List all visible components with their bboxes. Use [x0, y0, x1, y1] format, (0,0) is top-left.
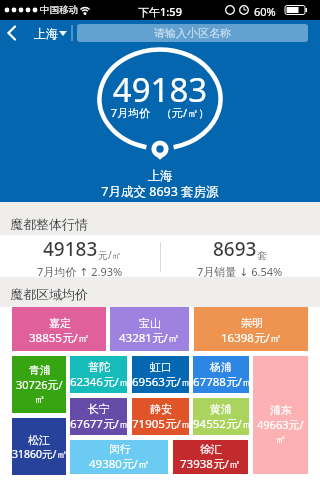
- staticText: 普陀: [88, 360, 110, 374]
- staticText: 黄浦: [210, 402, 232, 416]
- button[interactable]: 青浦: [12, 356, 66, 413]
- staticText: 长宁: [88, 402, 110, 416]
- staticText: 8693: [213, 236, 257, 262]
- staticText: 上海: [34, 26, 58, 41]
- staticText: 静安: [150, 402, 172, 416]
- button[interactable]: 8693: [160, 235, 320, 277]
- staticText: 青浦: [29, 363, 51, 377]
- staticText: 7月成交 8693 套房源: [0, 183, 320, 200]
- staticText: 7月均价 ↑ 2.93%: [37, 264, 123, 279]
- staticText: 请输入小区名称: [154, 26, 231, 40]
- staticText: 套: [257, 249, 267, 262]
- button[interactable]: 上海: [0, 20, 75, 46]
- staticText: 浦东: [270, 403, 292, 417]
- button[interactable]: 长宁: [70, 398, 127, 435]
- staticText: 中国移动: [40, 4, 78, 16]
- staticText: 30726元/: [16, 377, 63, 392]
- staticText: 宝山: [139, 316, 161, 330]
- staticText: 62346元/㎡: [70, 374, 127, 390]
- button[interactable]: 静安: [132, 398, 189, 435]
- staticText: 69563元/㎡: [132, 374, 189, 390]
- button[interactable]: 49183: [0, 235, 160, 277]
- staticText: 60%: [254, 4, 276, 19]
- staticText: 38855元/㎡: [29, 330, 90, 346]
- staticText: 松江: [28, 433, 50, 447]
- staticText: 魔都整体行情: [10, 216, 88, 232]
- staticText: 徐汇: [200, 442, 222, 456]
- staticText: 嘉定: [49, 316, 71, 330]
- staticText: 虹口: [150, 360, 172, 374]
- button[interactable]: 嘉定: [12, 307, 106, 351]
- staticText: 49380元/㎡: [89, 456, 150, 472]
- button[interactable]: 松江: [12, 418, 66, 475]
- button[interactable]: 49183: [0, 46, 320, 202]
- staticText: 7月销量 ↓ 6.54%: [197, 264, 283, 279]
- staticText: 崇明: [241, 316, 263, 330]
- staticText: 元/㎡: [98, 248, 122, 262]
- staticText: 魔都区域均价: [10, 286, 88, 302]
- button[interactable]: 请输入小区名称: [77, 24, 308, 42]
- staticText: 闵行: [109, 442, 131, 456]
- staticText: 71905元/㎡: [132, 416, 189, 432]
- staticText: ㎡: [34, 392, 45, 406]
- staticText: ㎡: [275, 432, 286, 446]
- button[interactable]: 黄浦: [193, 398, 249, 435]
- staticText: 94552元/㎡: [193, 416, 249, 432]
- staticText: 49663元/: [257, 417, 304, 432]
- staticText: 杨浦: [210, 360, 232, 374]
- staticText: 16398元/㎡: [221, 330, 282, 346]
- staticText: 43281元/㎡: [119, 330, 180, 346]
- button[interactable]: 宝山: [110, 307, 189, 351]
- button[interactable]: 虹口: [132, 356, 189, 393]
- button[interactable]: 闵行: [70, 440, 168, 474]
- staticText: 31860元/㎡: [12, 447, 66, 461]
- button[interactable]: 杨浦: [193, 356, 249, 393]
- staticText: 67677元/㎡: [70, 416, 127, 432]
- button[interactable]: 浦东: [253, 356, 308, 474]
- staticText: 49183: [0, 67, 320, 112]
- button[interactable]: 徐汇: [173, 440, 248, 474]
- staticText: 7月均价 （元/㎡）: [0, 105, 320, 120]
- staticText: 49183: [43, 236, 98, 262]
- staticText: 67788元/㎡: [193, 374, 249, 390]
- button[interactable]: 普陀: [70, 356, 127, 393]
- button[interactable]: 崇明: [194, 307, 308, 351]
- staticText: 上海: [0, 168, 320, 184]
- staticText: 下午1:59: [0, 4, 320, 19]
- staticText: 73938元/㎡: [180, 456, 241, 472]
